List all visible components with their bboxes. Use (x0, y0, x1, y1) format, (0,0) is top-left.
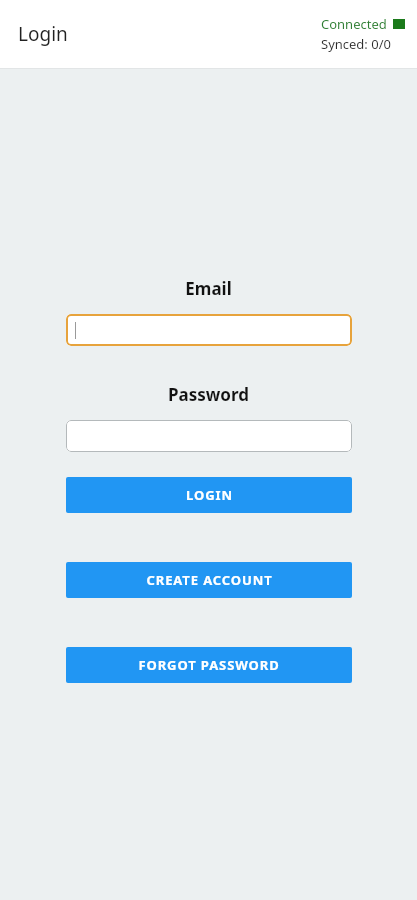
staticText: LOGIN (186, 486, 233, 504)
staticText: Synced: 0/0 (321, 35, 391, 53)
button[interactable]: CREATE ACCOUNT (66, 562, 352, 598)
staticText: CREATE ACCOUNT (146, 571, 273, 589)
staticText: Connected (321, 15, 387, 33)
button[interactable]: FORGOT PASSWORD (66, 647, 352, 683)
button[interactable] (66, 314, 352, 346)
button[interactable]: LOGIN (66, 477, 352, 513)
staticText: FORGOT PASSWORD (138, 656, 280, 674)
staticText: Email (185, 277, 232, 300)
button[interactable] (66, 420, 352, 452)
staticText: Password (168, 383, 249, 406)
staticText: Login (18, 21, 68, 47)
